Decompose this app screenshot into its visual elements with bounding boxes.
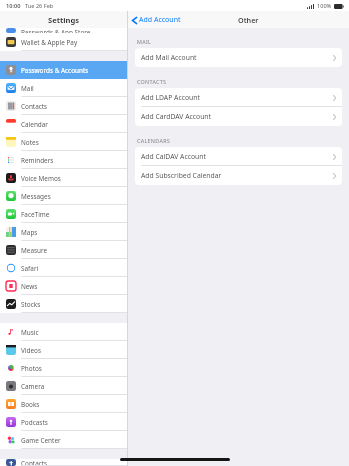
button[interactable]: Camera	[0, 377, 127, 395]
staticText: Contacts	[21, 102, 48, 111]
staticText: Game Center	[21, 436, 61, 445]
staticText: Podcasts	[21, 418, 48, 427]
button[interactable]: Maps	[0, 223, 127, 241]
button[interactable]: Calendar	[0, 115, 127, 133]
staticText: Calendar	[21, 120, 48, 129]
staticText: Stocks	[21, 300, 41, 309]
button[interactable]: Add Subscribed Calendar	[135, 166, 342, 185]
staticText: Passwords & Accounts	[21, 66, 89, 75]
button[interactable]: Photos	[0, 359, 127, 377]
staticText: Camera	[21, 382, 45, 391]
button[interactable]: Add CalDAV Account	[135, 147, 342, 166]
button[interactable]: Measure	[0, 241, 127, 259]
button[interactable]: Books	[0, 395, 127, 413]
button[interactable]: Stocks	[0, 295, 127, 313]
staticText: Add Account	[139, 15, 181, 25]
button[interactable]: FaceTime	[0, 205, 127, 223]
button[interactable]: News	[0, 277, 127, 295]
staticText: 100%	[317, 2, 332, 10]
button[interactable]: Contacts	[0, 97, 127, 115]
staticText: Music	[21, 328, 39, 337]
button[interactable]: Passwords & App Store	[0, 28, 127, 33]
staticText: FaceTime	[21, 210, 50, 219]
staticText: 10:00	[6, 2, 21, 10]
staticText: Add Mail Account	[141, 53, 197, 62]
button[interactable]: Podcasts	[0, 413, 127, 431]
button[interactable]: Messages	[0, 187, 127, 205]
button[interactable]: Wallet & Apple Pay	[0, 33, 127, 51]
button[interactable]: Mail	[0, 79, 127, 97]
staticText: Add CardDAV Account	[141, 112, 212, 121]
button[interactable]: Notes	[0, 133, 127, 151]
staticText: Photos	[21, 364, 42, 373]
staticText: Add LDAP Account	[141, 93, 200, 102]
staticText: Voice Memos	[21, 174, 61, 183]
button[interactable]: Contacts	[0, 459, 127, 466]
staticText: Add Subscribed Calendar	[141, 171, 222, 180]
staticText: Mail	[21, 84, 34, 93]
staticText: Measure	[21, 246, 48, 255]
button[interactable]: Reminders	[0, 151, 127, 169]
staticText: Tue 26 Feb	[25, 2, 54, 10]
other: Back	[132, 17, 137, 24]
staticText: Maps	[21, 228, 38, 237]
staticText: Notes	[21, 138, 39, 147]
button[interactable]: Voice Memos	[0, 169, 127, 187]
staticText: Contacts	[21, 459, 48, 466]
staticText: Books	[21, 400, 40, 409]
staticText: News	[21, 282, 38, 291]
staticText: CONTACTS	[137, 78, 167, 85]
button[interactable]: Videos	[0, 341, 127, 359]
button[interactable]: Add LDAP Account	[135, 88, 342, 107]
staticText: Wallet & Apple Pay	[21, 38, 78, 47]
staticText: Reminders	[21, 156, 54, 165]
button[interactable]: Add Mail Account	[135, 48, 342, 67]
staticText: Passwords & App Store	[21, 28, 91, 33]
staticText: MAIL	[137, 38, 152, 45]
staticText: Settings	[48, 15, 80, 25]
button[interactable]: Safari	[0, 259, 127, 277]
button[interactable]: Back	[132, 15, 181, 25]
staticText: Other	[238, 15, 259, 25]
button[interactable]: Game Center	[0, 431, 127, 449]
staticText: Messages	[21, 192, 51, 201]
button[interactable]: Music	[0, 323, 127, 341]
button[interactable]: Passwords & Accounts	[0, 61, 127, 79]
staticText: Videos	[21, 346, 41, 355]
staticText: Safari	[21, 264, 39, 273]
staticText: Add CalDAV Account	[141, 152, 206, 161]
button[interactable]: Add CardDAV Account	[135, 107, 342, 126]
staticText: CALENDARS	[137, 137, 171, 144]
